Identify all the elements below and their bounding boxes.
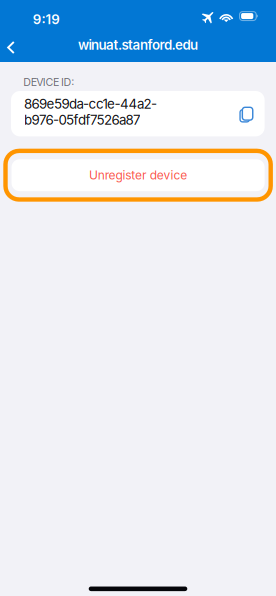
button[interactable]: Back: [0, 30, 29, 64]
staticText: 9:19: [33, 11, 60, 27]
staticText: DEVICE ID:: [23, 76, 74, 89]
staticText: 869e59da-cc1e-44a2-b976-05fdf7526a87: [24, 96, 157, 128]
staticText: winuat.stanford.edu: [78, 37, 198, 53]
button[interactable]: Unregister device: [5, 151, 271, 199]
button[interactable]: Copy device ID: [236, 102, 255, 125]
staticText: Unregister device: [89, 168, 187, 182]
